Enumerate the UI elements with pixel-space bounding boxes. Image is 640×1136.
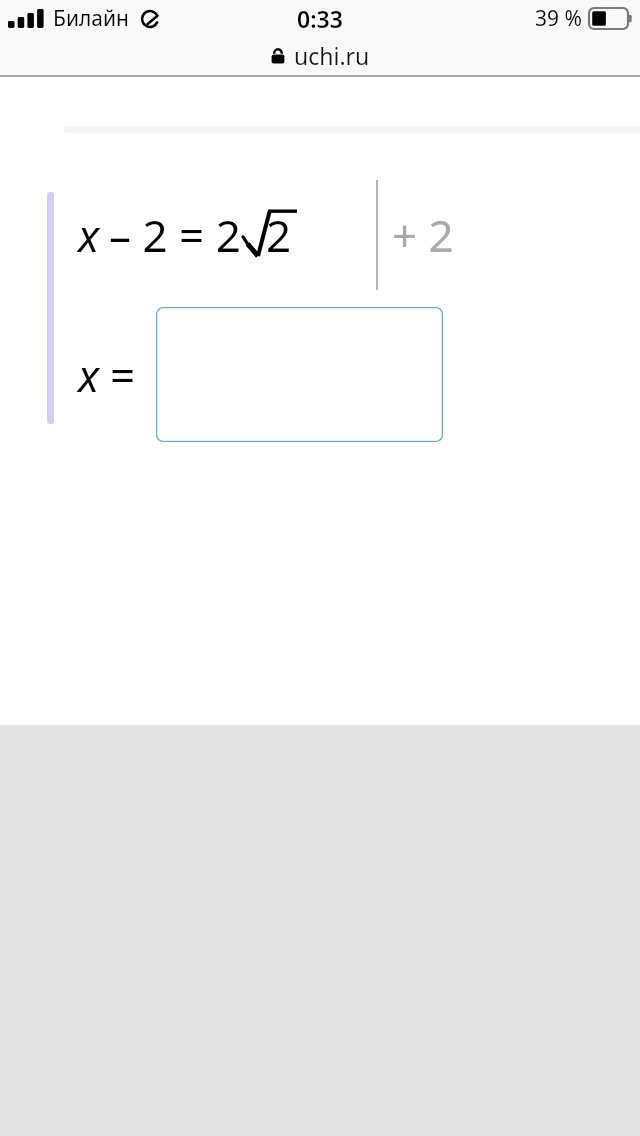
staticText: 2 xyxy=(266,205,292,265)
staticText: x xyxy=(78,205,100,265)
button[interactable]: Secure connection xyxy=(270,40,370,71)
staticText: 39 % xyxy=(535,4,582,33)
staticText: + 2 xyxy=(392,205,454,265)
staticText: = xyxy=(110,345,136,405)
staticText: Билайн xyxy=(53,4,129,33)
other: Signal strength xyxy=(8,9,50,29)
other: Battery 39 percent xyxy=(589,8,633,29)
staticText: 0:33 xyxy=(297,3,343,34)
staticText: uchi.ru xyxy=(294,40,370,71)
staticText: – 2 = 2 xyxy=(109,205,241,265)
other: Secure connection xyxy=(270,46,286,66)
button[interactable]: Answer input field xyxy=(156,307,443,442)
other: Carrier icon xyxy=(138,7,162,31)
staticText: x xyxy=(78,345,100,405)
